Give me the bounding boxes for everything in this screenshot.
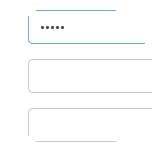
button[interactable]	[0, 0, 152, 152]
button[interactable]	[0, 0, 152, 152]
button[interactable]	[0, 0, 152, 152]
